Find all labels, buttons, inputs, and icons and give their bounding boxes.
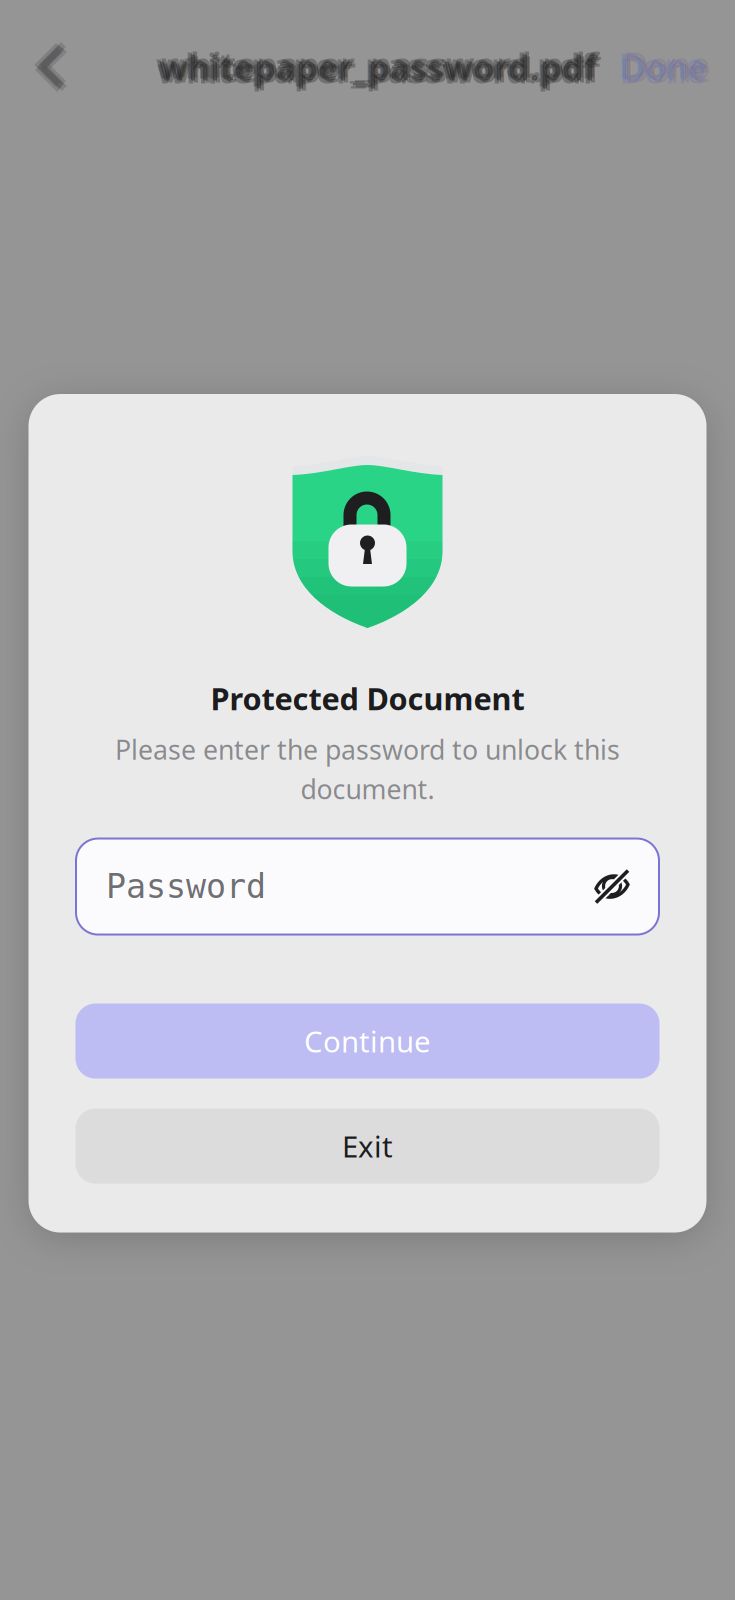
- staticText: Done: [619, 47, 706, 93]
- staticText: Done: [618, 42, 705, 88]
- staticText: whitepaper_password.pdf: [161, 41, 599, 87]
- staticText: Protected Document: [210, 678, 524, 719]
- button[interactable]: Back: [22, 38, 80, 96]
- staticText: whitepaper_password.pdf: [156, 42, 594, 88]
- staticText: Done: [621, 44, 708, 90]
- staticText: Continue: [304, 1022, 431, 1061]
- button[interactable]: Done: [619, 38, 711, 96]
- staticText: Exit: [342, 1127, 393, 1166]
- staticText: whitepaper_password.pdf: [162, 46, 600, 92]
- button[interactable]: Exit: [75, 1109, 659, 1184]
- staticText: Password: [106, 868, 266, 905]
- staticText: Done: [624, 46, 711, 92]
- button[interactable]: Show password: [593, 868, 631, 906]
- staticText: whitepaper_password.pdf: [157, 47, 595, 93]
- staticText: whitepaper_password.pdf: [159, 44, 597, 90]
- button[interactable]: Continue: [75, 1004, 659, 1079]
- staticText: Done: [623, 41, 710, 87]
- staticText: document.: [300, 771, 434, 806]
- staticText: Please enter the password to unlock this: [115, 732, 620, 767]
